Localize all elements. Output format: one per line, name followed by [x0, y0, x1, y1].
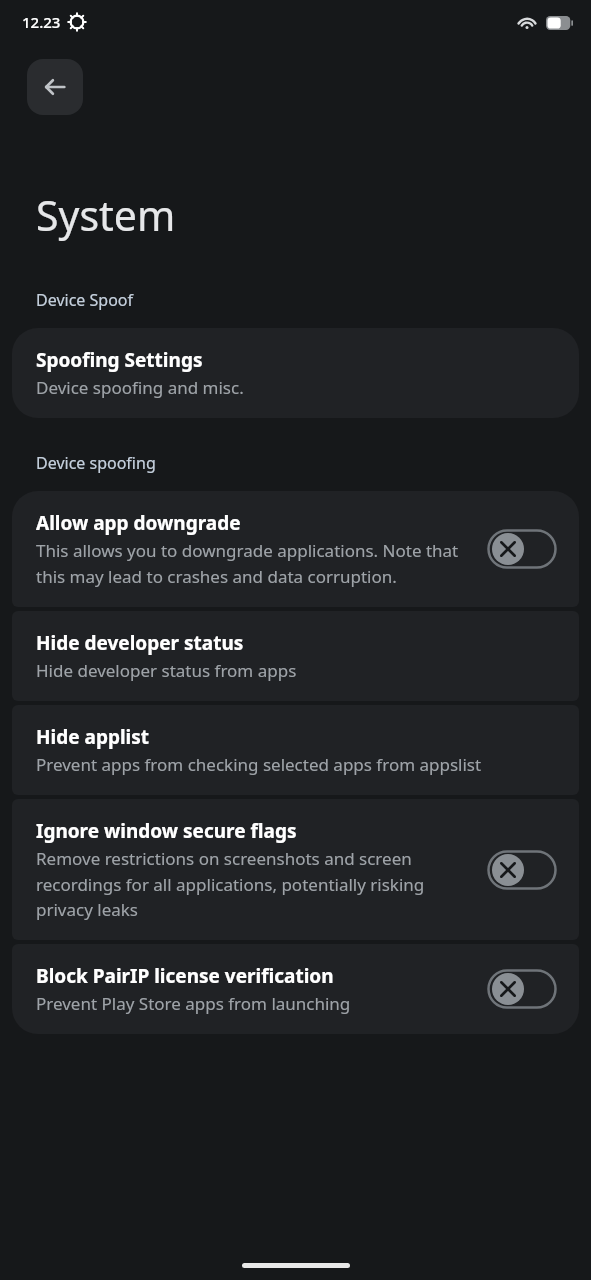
button[interactable]: Spoofing Settings	[12, 328, 579, 418]
staticText: Hide applist	[36, 724, 150, 750]
staticText: This allows you to downgrade application…	[36, 539, 461, 588]
staticText: Device Spoof	[36, 289, 133, 311]
button[interactable]: Ignore window secure flags	[12, 799, 579, 940]
staticText: Prevent apps from checking selected apps…	[36, 753, 482, 776]
button[interactable]: Hide applist	[12, 705, 579, 795]
staticText: Ignore window secure flags	[36, 818, 297, 844]
staticText: Prevent Play Store apps from launching	[36, 992, 351, 1015]
button[interactable]: Hide developer status	[12, 611, 579, 701]
staticText: Hide developer status from apps	[36, 659, 297, 682]
staticText: Spoofing Settings	[36, 347, 203, 373]
staticText: Allow app downgrade	[36, 510, 241, 536]
staticText: Remove restrictions on screenshots and s…	[36, 847, 461, 921]
staticText: Hide developer status	[36, 630, 244, 656]
button[interactable]: Back	[27, 59, 83, 115]
staticText: Device spoofing	[36, 452, 156, 474]
button[interactable]: Toggle Ignore window secure flags	[487, 850, 557, 890]
button[interactable]: Toggle Allow app downgrade	[487, 529, 557, 569]
button[interactable]: Toggle Block PairIP license verification	[487, 969, 557, 1009]
button[interactable]: Block PairIP license verification	[12, 944, 579, 1034]
staticText: System	[36, 187, 176, 243]
staticText: Device spoofing and misc.	[36, 376, 244, 399]
button[interactable]: Allow app downgrade	[12, 491, 579, 607]
staticText: 12.23	[22, 12, 61, 32]
staticText: Block PairIP license verification	[36, 963, 334, 989]
